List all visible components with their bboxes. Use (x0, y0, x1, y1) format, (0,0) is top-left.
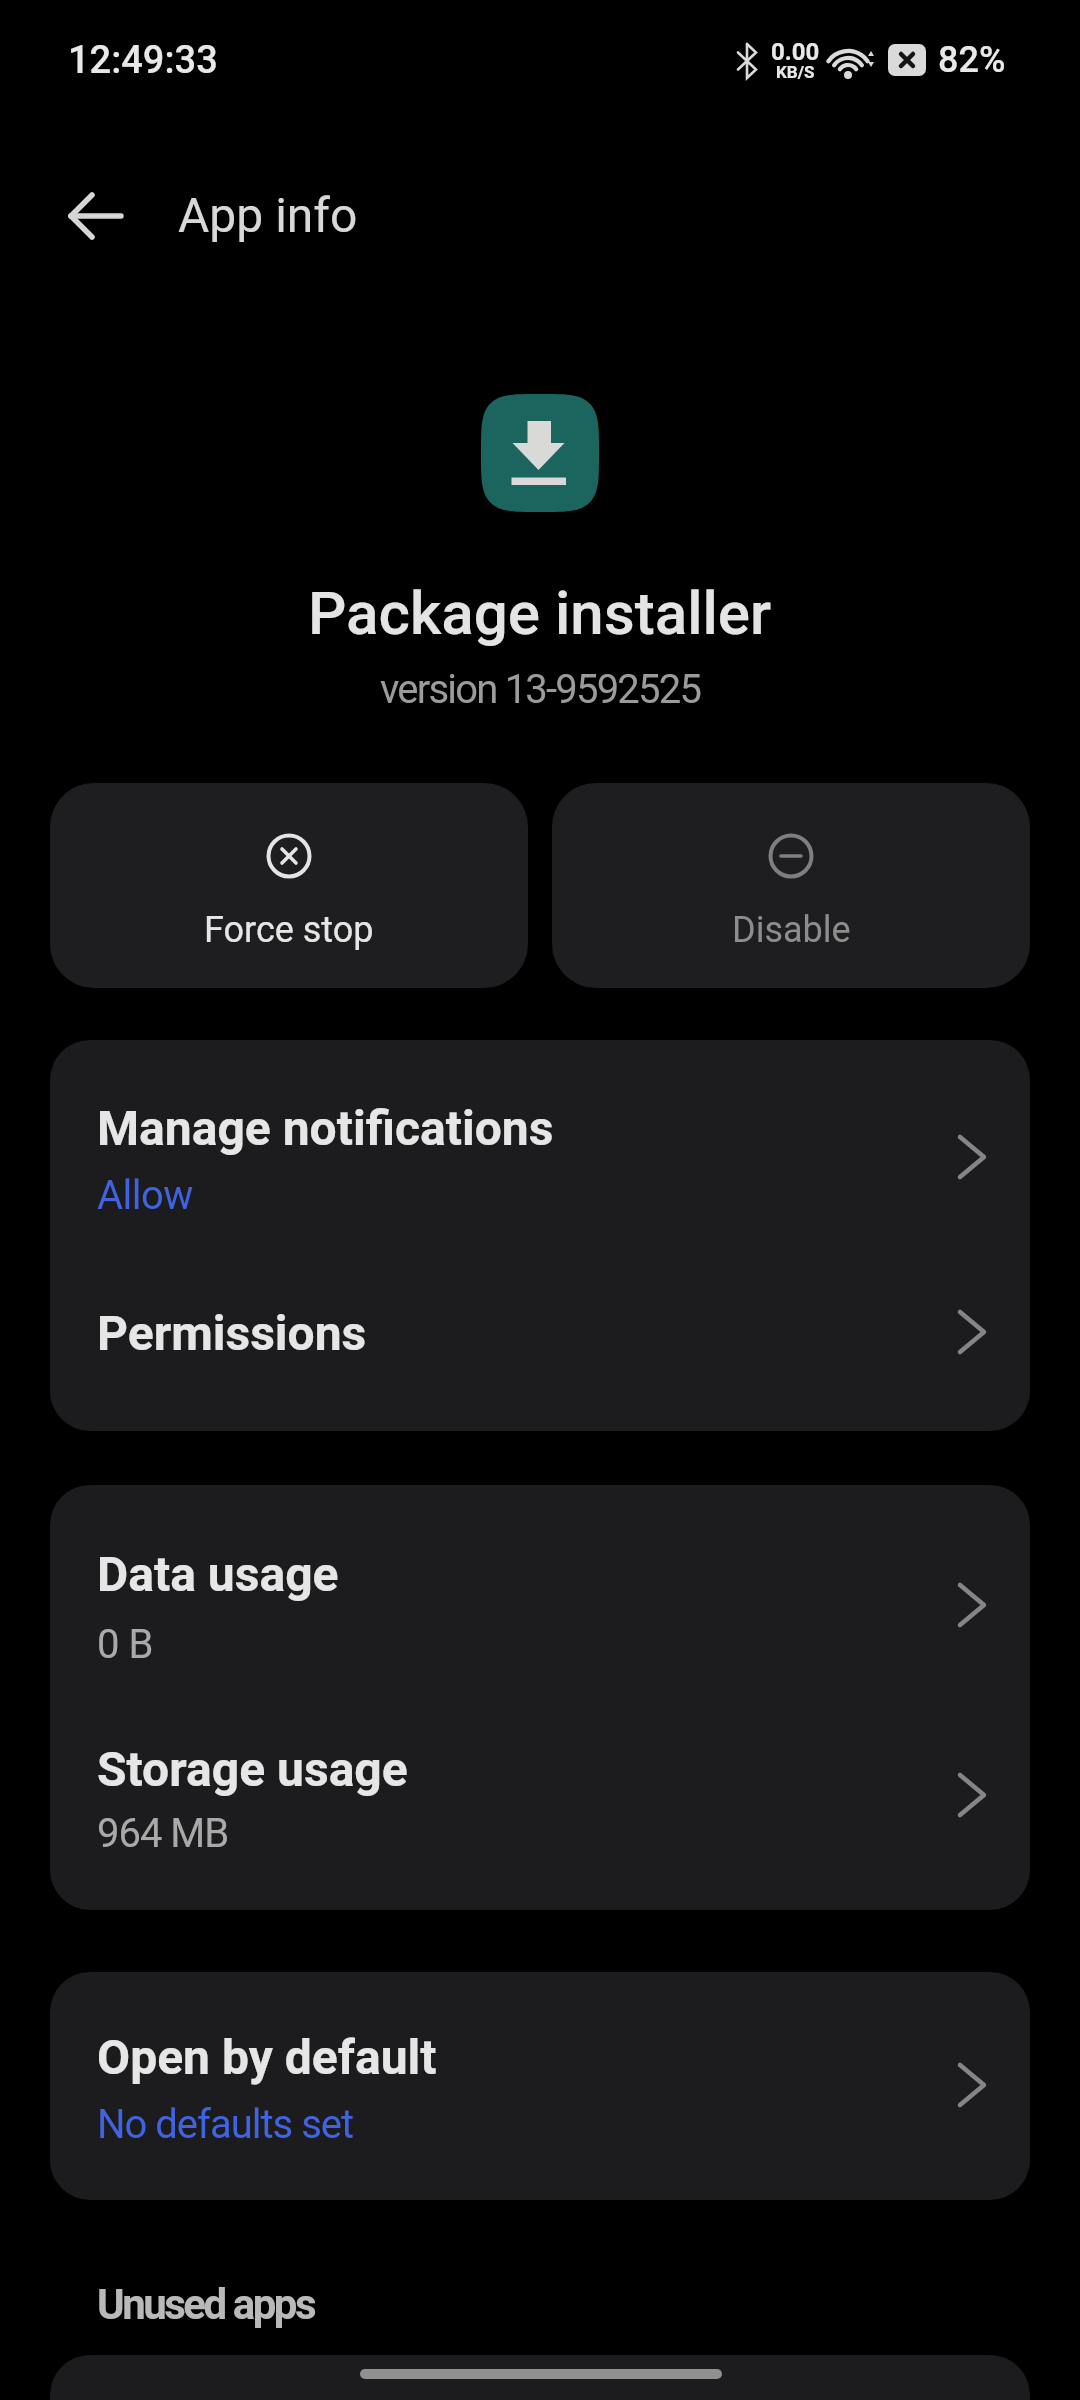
staticText: App info (178, 187, 358, 243)
staticText: 82% (938, 39, 1006, 81)
button[interactable]: Force stop (50, 783, 528, 988)
staticText: Open by default (97, 2029, 437, 2085)
staticText: Unused apps (97, 2280, 315, 2329)
staticText: 0.00 (771, 38, 820, 66)
staticText: 964 MB (97, 1810, 229, 1857)
button[interactable] (50, 1972, 1030, 2200)
staticText: Data usage (97, 1546, 339, 1602)
staticText: Allow (97, 1172, 193, 1219)
staticText: KB/S (776, 62, 815, 82)
button[interactable] (50, 1245, 1030, 1431)
button[interactable] (50, 185, 142, 247)
staticText: Disable (732, 909, 851, 951)
staticText: Storage usage (97, 1741, 408, 1797)
button[interactable] (50, 1697, 1030, 1910)
staticText: 0 B (97, 1621, 153, 1668)
button[interactable]: Disable (552, 783, 1030, 988)
button[interactable] (50, 2355, 1030, 2400)
staticText: Package installer (308, 578, 772, 648)
staticText: 12:49:33 (68, 38, 218, 83)
staticText: Permissions (97, 1305, 367, 1361)
button[interactable] (50, 1040, 1030, 1245)
staticText: Force stop (204, 909, 374, 951)
staticText: version 13-9592525 (380, 666, 701, 713)
button[interactable] (50, 1485, 1030, 1697)
staticText: Manage notifications (97, 1100, 554, 1156)
staticText: No defaults set (97, 2101, 354, 2148)
